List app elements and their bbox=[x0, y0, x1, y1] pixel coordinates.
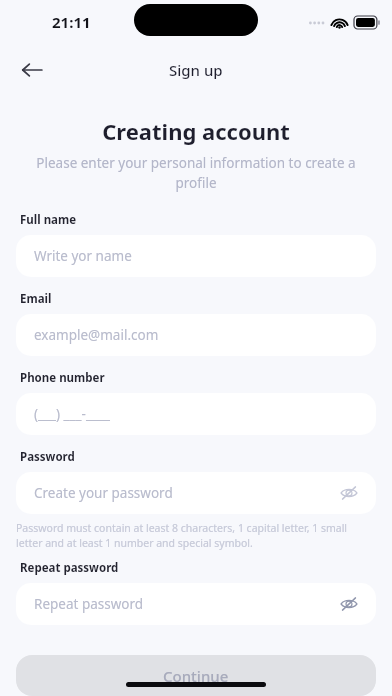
staticText: (___) ___-____ bbox=[34, 405, 110, 423]
button[interactable]: Back bbox=[10, 48, 54, 92]
staticText: 21:11 bbox=[52, 12, 91, 32]
staticText: Sign up bbox=[169, 60, 223, 80]
staticText: Write yor name bbox=[34, 247, 132, 265]
staticText: Full name bbox=[20, 212, 77, 228]
staticText: Creating account bbox=[102, 116, 290, 146]
staticText: Continue bbox=[163, 666, 229, 686]
staticText: Repeat password bbox=[34, 595, 144, 613]
button[interactable]: Continue bbox=[16, 655, 376, 696]
staticText: Repeat password bbox=[20, 560, 119, 576]
staticText: Password must contain at least 8 charact… bbox=[16, 521, 376, 550]
button[interactable]: (___) ___-____ bbox=[16, 393, 376, 435]
button[interactable]: example@mail.com bbox=[16, 314, 376, 356]
staticText: Create your password bbox=[34, 484, 173, 502]
staticText: Please enter your personal information t… bbox=[36, 154, 356, 192]
button[interactable]: Show password bbox=[332, 476, 366, 510]
button[interactable]: Repeat password bbox=[16, 583, 376, 625]
button[interactable]: Write yor name bbox=[16, 235, 376, 277]
staticText: Password bbox=[20, 449, 75, 465]
button[interactable]: Show password bbox=[332, 587, 366, 621]
staticText: Email bbox=[20, 291, 52, 307]
staticText: example@mail.com bbox=[34, 326, 159, 344]
staticText: Phone number bbox=[20, 370, 105, 386]
button[interactable]: Create your password bbox=[16, 472, 376, 514]
